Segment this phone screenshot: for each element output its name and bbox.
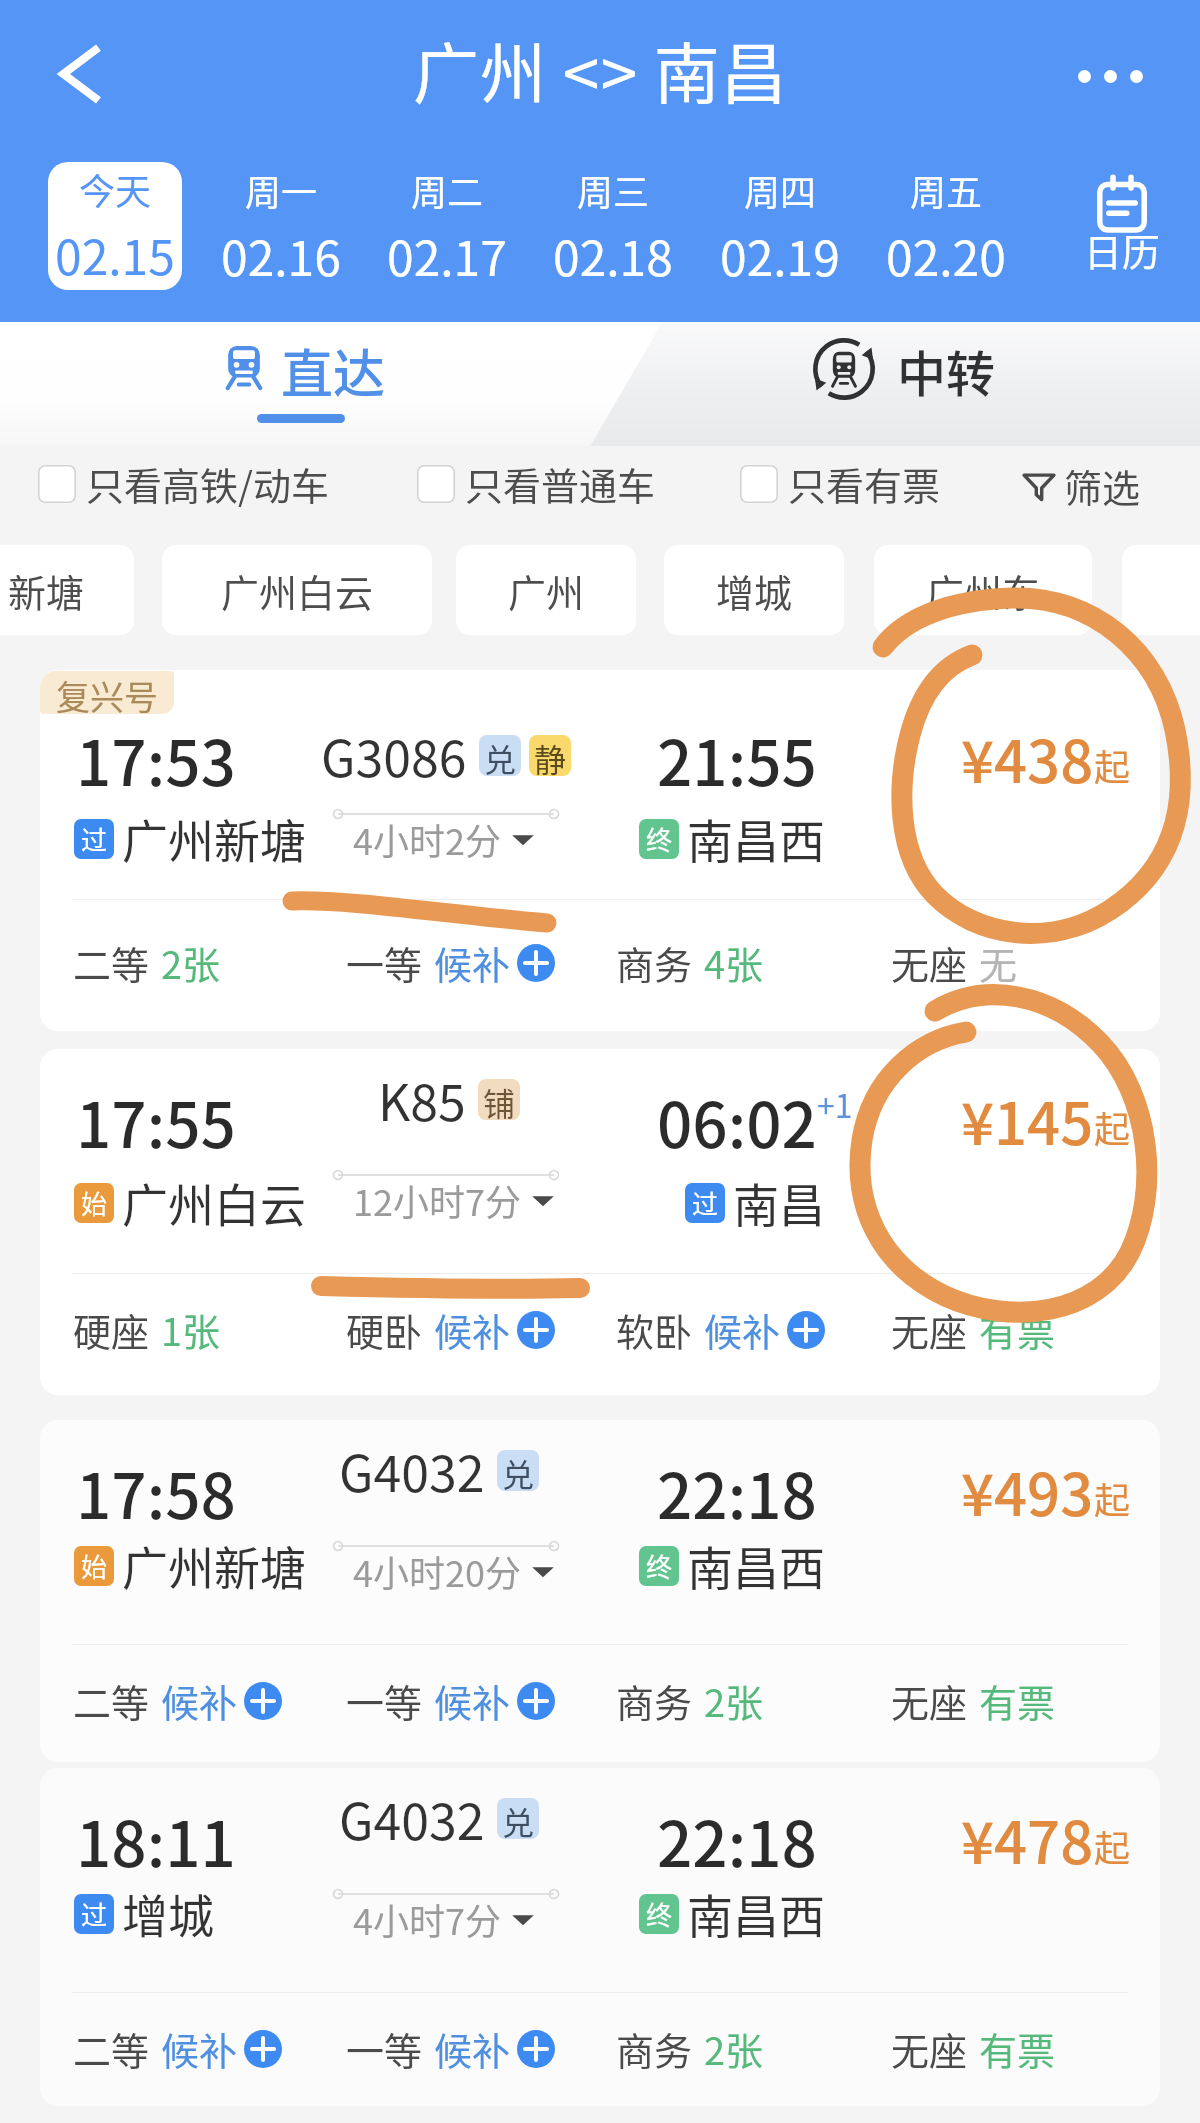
button[interactable]: 商务 (616, 935, 764, 990)
staticText: 复兴号 (56, 671, 158, 714)
staticText: 有票 (979, 1302, 1056, 1357)
staticText: 直达 (281, 333, 386, 408)
staticText: 起 (1094, 1820, 1131, 1872)
staticText: 一等 (346, 935, 423, 990)
button[interactable]: 筛选 (1022, 458, 1141, 513)
button[interactable]: 周三 (530, 163, 696, 291)
staticText: G4032 (339, 1434, 485, 1506)
button[interactable]: 无座 (891, 2021, 1056, 2076)
staticText: 1张 (161, 1302, 221, 1357)
staticText: 广州新塘 (122, 805, 306, 872)
staticText: 广州东 (926, 563, 1041, 618)
staticText: 南昌西 (687, 1532, 825, 1599)
staticText: 17:58 (76, 1447, 236, 1537)
button[interactable]: 直达 (0, 322, 660, 446)
staticText: 南昌西 (687, 1880, 825, 1947)
staticText: 候补 (434, 2021, 511, 2076)
staticText: 周五 (910, 164, 983, 216)
staticText: 02.15 (55, 219, 175, 289)
staticText: 广州白云 (221, 563, 374, 618)
staticText: 02.17 (387, 220, 507, 290)
button[interactable]: 周五 (863, 163, 1029, 291)
staticText: 过 (81, 1895, 108, 1933)
staticText: 无座 (891, 1302, 968, 1357)
button[interactable]: 17:55 (40, 1049, 1160, 1395)
button[interactable]: 18:11 (40, 1768, 1160, 2106)
staticText: 二等 (73, 2021, 150, 2076)
button[interactable]: 一等 (346, 935, 555, 990)
staticText: 广州 (508, 563, 585, 618)
staticText: 02.18 (553, 220, 673, 290)
staticText: 商务 (616, 935, 693, 990)
staticText: 无座 (891, 2021, 968, 2076)
button[interactable]: 一等 (346, 1673, 555, 1728)
staticText: 22:18 (657, 1447, 817, 1537)
button[interactable]: 只看普通车 (417, 456, 656, 511)
button[interactable]: 周四 (697, 163, 863, 291)
staticText: 中转 (897, 335, 996, 406)
button[interactable]: 软卧 (616, 1302, 825, 1357)
button[interactable]: 复兴号 (40, 670, 1160, 1031)
button[interactable]: 无座 (891, 1302, 1056, 1357)
staticText: 06:02 (657, 1076, 817, 1166)
button[interactable]: 二等 (73, 1673, 282, 1728)
staticText: 增城 (716, 563, 793, 618)
button[interactable]: 只看高铁/动车 (38, 456, 329, 511)
staticText: 日历 (1084, 222, 1161, 277)
button[interactable]: Calendar (1070, 176, 1174, 291)
button[interactable]: 二等 (73, 2021, 282, 2076)
staticText: 商务 (616, 2021, 693, 2076)
button[interactable]: Back (32, 26, 128, 122)
button[interactable]: 无座 (891, 1673, 1056, 1728)
button[interactable]: 硬座 (73, 1302, 221, 1357)
button[interactable]: 只看有票 (740, 456, 941, 511)
staticText: 过 (692, 1184, 719, 1222)
button[interactable] (1122, 545, 1200, 635)
staticText: G4032 (339, 1782, 485, 1854)
button[interactable]: 商务 (616, 1673, 764, 1728)
staticText: 起 (1094, 739, 1131, 791)
button[interactable]: 新塘 (0, 545, 134, 635)
staticText: 候补 (434, 935, 511, 990)
button[interactable]: 一等 (346, 2021, 555, 2076)
button[interactable]: 广州 (456, 545, 636, 635)
staticText: 广州 <> 南昌 (413, 21, 788, 117)
staticText: 无 (979, 935, 1018, 990)
button[interactable]: 广州白云 (162, 545, 432, 635)
button[interactable]: 周二 (364, 163, 530, 291)
staticText: 候补 (704, 1302, 781, 1357)
button[interactable]: 中转 (660, 322, 1200, 446)
button[interactable]: 增城 (664, 545, 844, 635)
staticText: 今天 (79, 163, 152, 215)
staticText: 无座 (891, 1673, 968, 1728)
staticText: 4小时20分 (353, 1545, 521, 1597)
button[interactable]: 今天 (48, 162, 182, 290)
staticText: K85 (378, 1063, 466, 1135)
staticText: 过 (81, 820, 108, 858)
button[interactable]: More options (1072, 38, 1148, 114)
button[interactable]: 硬卧 (346, 1302, 555, 1357)
staticText: 兑 (502, 1450, 535, 1491)
staticText: 铺 (483, 1079, 516, 1120)
staticText: 广州白云 (122, 1169, 306, 1236)
staticText: 只看有票 (788, 456, 941, 511)
staticText: 周四 (744, 164, 817, 216)
button[interactable]: 广州东 (874, 545, 1092, 635)
staticText: 周一 (245, 164, 318, 216)
staticText: 新塘 (8, 563, 85, 618)
staticText: 商务 (616, 1673, 693, 1728)
staticText: 有票 (979, 1673, 1056, 1728)
button[interactable]: 17:58 (40, 1420, 1160, 1762)
staticText: 筛选 (1064, 458, 1141, 513)
staticText: 2张 (161, 935, 221, 990)
button[interactable]: 无座 (891, 935, 1018, 990)
button[interactable]: 二等 (73, 935, 221, 990)
staticText: 二等 (73, 1673, 150, 1728)
staticText: 一等 (346, 1673, 423, 1728)
staticText: 17:53 (76, 714, 236, 804)
staticText: 硬卧 (346, 1302, 423, 1357)
staticText: 候补 (161, 2021, 238, 2076)
staticText: 候补 (161, 1673, 238, 1728)
button[interactable]: 周一 (198, 163, 364, 291)
button[interactable]: 商务 (616, 2021, 764, 2076)
